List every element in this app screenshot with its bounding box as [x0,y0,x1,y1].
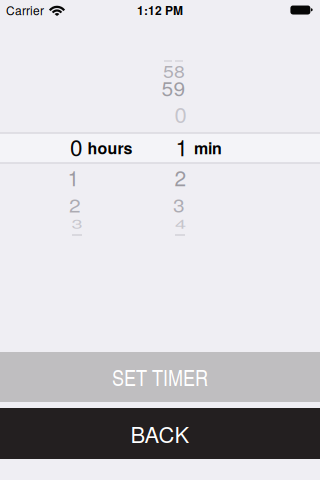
staticText: BACK [130,418,189,449]
staticText: 1 [67,162,79,192]
staticText: 4 [175,209,186,237]
staticText: min [194,136,222,159]
staticText: 0 [70,130,83,163]
staticText: 3 [71,209,82,237]
staticText: 1:12 PM [137,1,183,19]
staticText: 1 [175,130,188,163]
staticText: 3 [173,189,185,219]
staticText: 2 [69,189,81,219]
staticText: 59 [161,73,185,103]
button[interactable]: BACK [0,408,320,459]
staticText: 2 [174,162,186,192]
staticText: 0 [174,98,186,129]
staticText: hours [87,136,132,159]
staticText: Carrier [6,1,44,19]
button[interactable]: SET TIMER [0,352,320,402]
staticText: 58 [163,56,185,84]
staticText: SET TIMER [112,362,208,392]
